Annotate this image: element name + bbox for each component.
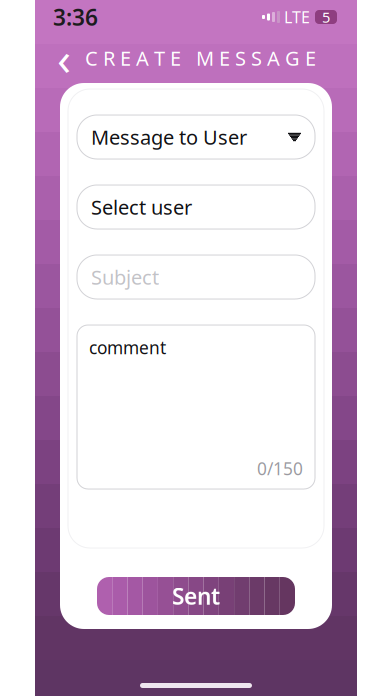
- staticText: Select user: [91, 194, 192, 220]
- staticText: comment: [89, 336, 166, 359]
- staticText: 3:36: [53, 2, 98, 32]
- staticText: Sent: [172, 581, 220, 611]
- button[interactable]: Subject: [77, 255, 315, 299]
- staticText: ‹: [57, 28, 71, 88]
- staticText: 5: [322, 7, 330, 27]
- staticText: Subject: [91, 264, 159, 290]
- button[interactable]: Select user: [77, 185, 315, 229]
- button[interactable]: Back: [49, 41, 79, 75]
- button[interactable]: Message to User: [77, 115, 315, 159]
- staticText: C R E A T E M E S S A G E: [85, 45, 316, 71]
- staticText: Message to User: [91, 124, 247, 150]
- button[interactable]: comment: [77, 325, 315, 489]
- staticText: LTE: [284, 6, 310, 28]
- staticText: 0/150: [257, 457, 303, 480]
- button[interactable]: Sent: [97, 577, 295, 615]
